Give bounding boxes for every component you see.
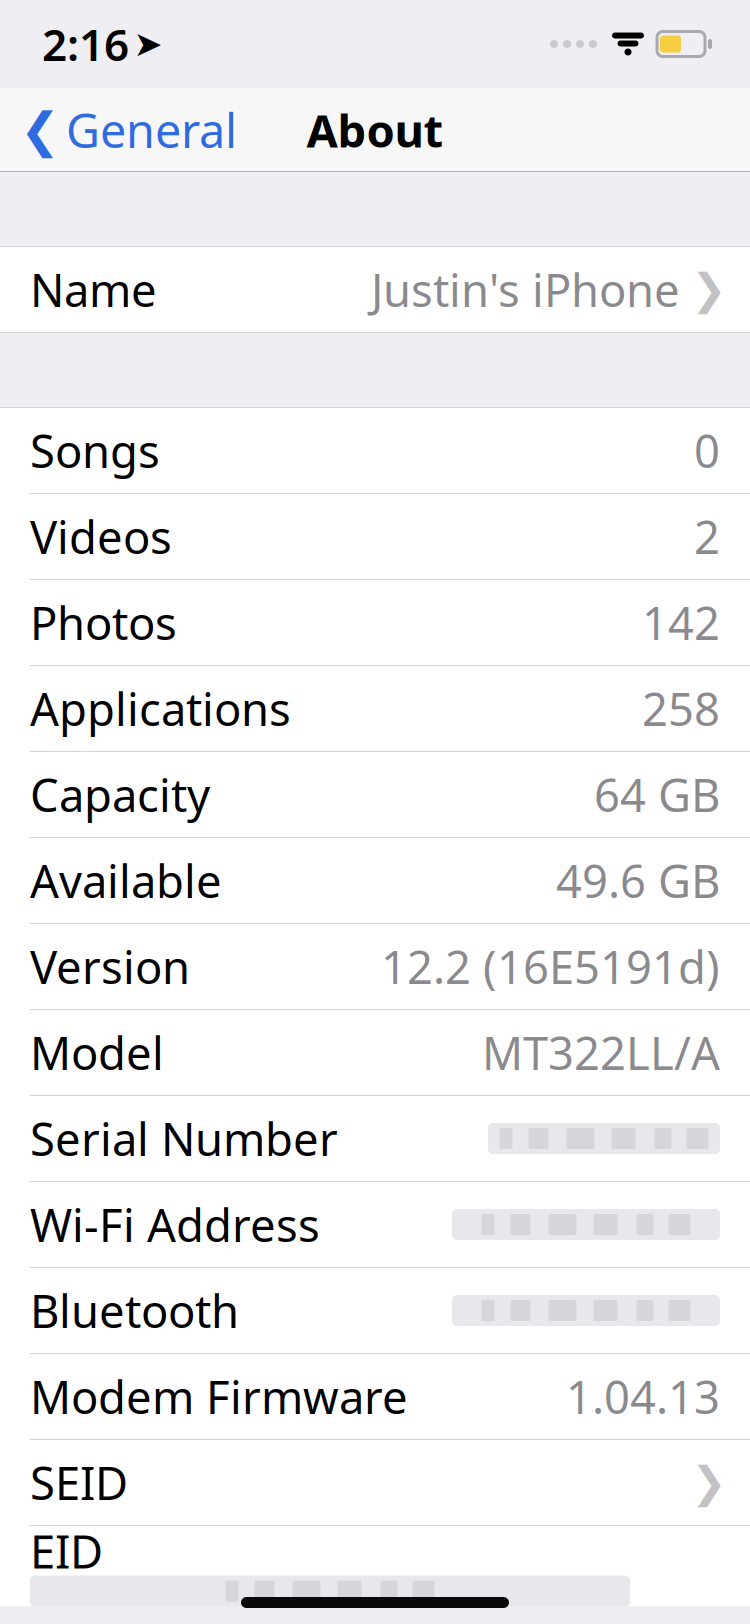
staticText: MT322LL/A — [482, 1022, 720, 1083]
staticText: Modem Firmware — [30, 1366, 408, 1427]
staticText: Bluetooth — [30, 1280, 239, 1341]
staticText: Capacity — [30, 764, 210, 825]
staticText: Name — [30, 259, 157, 320]
staticText: 142 — [642, 592, 720, 653]
staticText: 0 — [694, 420, 720, 481]
staticText: SEID — [30, 1452, 128, 1513]
staticText: ❮ — [20, 103, 60, 157]
staticText: 258 — [642, 678, 720, 739]
staticText: ➤ — [133, 24, 162, 64]
staticText: EID — [30, 1521, 103, 1581]
staticText: 49.6 GB — [556, 850, 720, 911]
staticText: 12.2 (16E5191d) — [381, 936, 720, 997]
staticText: Applications — [30, 678, 291, 739]
staticText: 64 GB — [594, 764, 720, 825]
staticText: 2 — [694, 506, 720, 567]
staticText: Available — [30, 850, 222, 911]
button[interactable]: Name — [0, 247, 750, 332]
staticText: 1.04.13 — [566, 1366, 720, 1427]
staticText: Wi-Fi Address — [30, 1194, 320, 1255]
staticText: ❯ — [691, 1458, 727, 1507]
staticText: 2:16 — [42, 15, 129, 73]
staticText: Serial Number — [30, 1108, 338, 1169]
staticText: About — [306, 100, 443, 160]
staticText: Videos — [30, 506, 172, 567]
staticText: Photos — [30, 592, 177, 653]
button[interactable]: SEID — [0, 1440, 750, 1525]
staticText: Justin's iPhone — [371, 259, 680, 320]
staticText: Songs — [30, 420, 160, 481]
staticText: ❯ — [691, 265, 727, 314]
button[interactable]: ❮ — [0, 87, 237, 173]
staticText: Version — [30, 936, 190, 997]
staticText: General — [66, 99, 237, 161]
staticText: Model — [30, 1022, 164, 1083]
